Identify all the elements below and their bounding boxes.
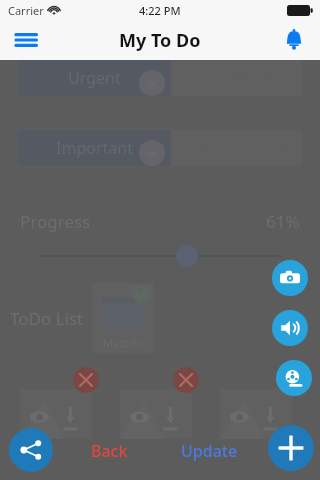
staticText: 61% <box>266 210 300 233</box>
button[interactable]: Notifications <box>282 28 306 52</box>
button[interactable]: Add <box>268 425 314 471</box>
staticText: Update <box>181 440 238 462</box>
button[interactable] <box>220 389 292 439</box>
button[interactable] <box>20 389 92 439</box>
button[interactable]: Audio <box>272 310 308 346</box>
staticText: 4:22 PM <box>139 3 181 18</box>
button[interactable]: Video <box>276 360 312 396</box>
button[interactable] <box>120 389 192 439</box>
staticText: Progress <box>20 210 91 233</box>
staticText: My To Do <box>119 28 201 53</box>
button[interactable]: Camera <box>272 260 308 296</box>
button[interactable]: Update <box>167 440 251 462</box>
button[interactable]: Delete <box>173 367 199 393</box>
staticText: Back <box>91 440 128 462</box>
button[interactable]: Urgent <box>18 60 302 96</box>
staticText: Urgent <box>68 67 121 89</box>
staticText: ToDo List <box>10 307 84 330</box>
staticText: Carrier <box>8 3 44 18</box>
button[interactable]: Share <box>9 428 53 472</box>
button[interactable]: Back <box>69 440 149 462</box>
staticText: Important <box>56 137 133 159</box>
button[interactable]: Delete <box>73 367 99 393</box>
button[interactable]: Important <box>18 130 302 166</box>
button[interactable]: Menu <box>14 26 42 54</box>
